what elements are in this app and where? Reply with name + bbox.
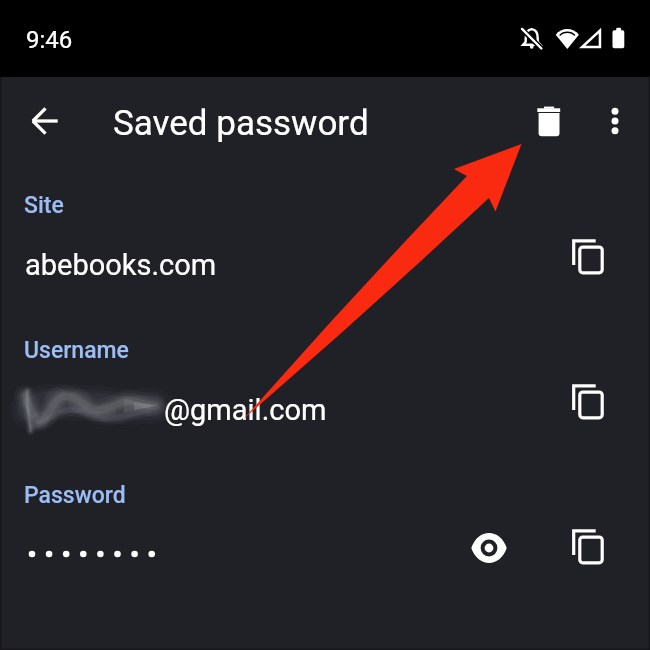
button[interactable]: Copy username: [554, 368, 622, 436]
button[interactable]: Copy site: [554, 223, 622, 291]
button[interactable]: Copy password: [554, 513, 622, 581]
staticText: 9:46: [26, 26, 73, 54]
staticText: abebooks.com: [25, 248, 217, 282]
button[interactable]: More options: [585, 91, 645, 151]
staticText: Username: [24, 337, 129, 364]
staticText: Site: [24, 192, 64, 219]
button[interactable]: Password: [2, 475, 650, 585]
button[interactable]: Site abebooks.com: [2, 185, 650, 295]
button[interactable]: Show password: [459, 518, 519, 578]
button[interactable]: Delete: [518, 91, 578, 151]
button[interactable]: Back: [14, 90, 76, 152]
staticText: @gmail.com: [164, 393, 327, 427]
staticText: Saved password: [113, 103, 369, 144]
button[interactable]: Username: [2, 330, 650, 440]
staticText: Password: [24, 482, 126, 509]
